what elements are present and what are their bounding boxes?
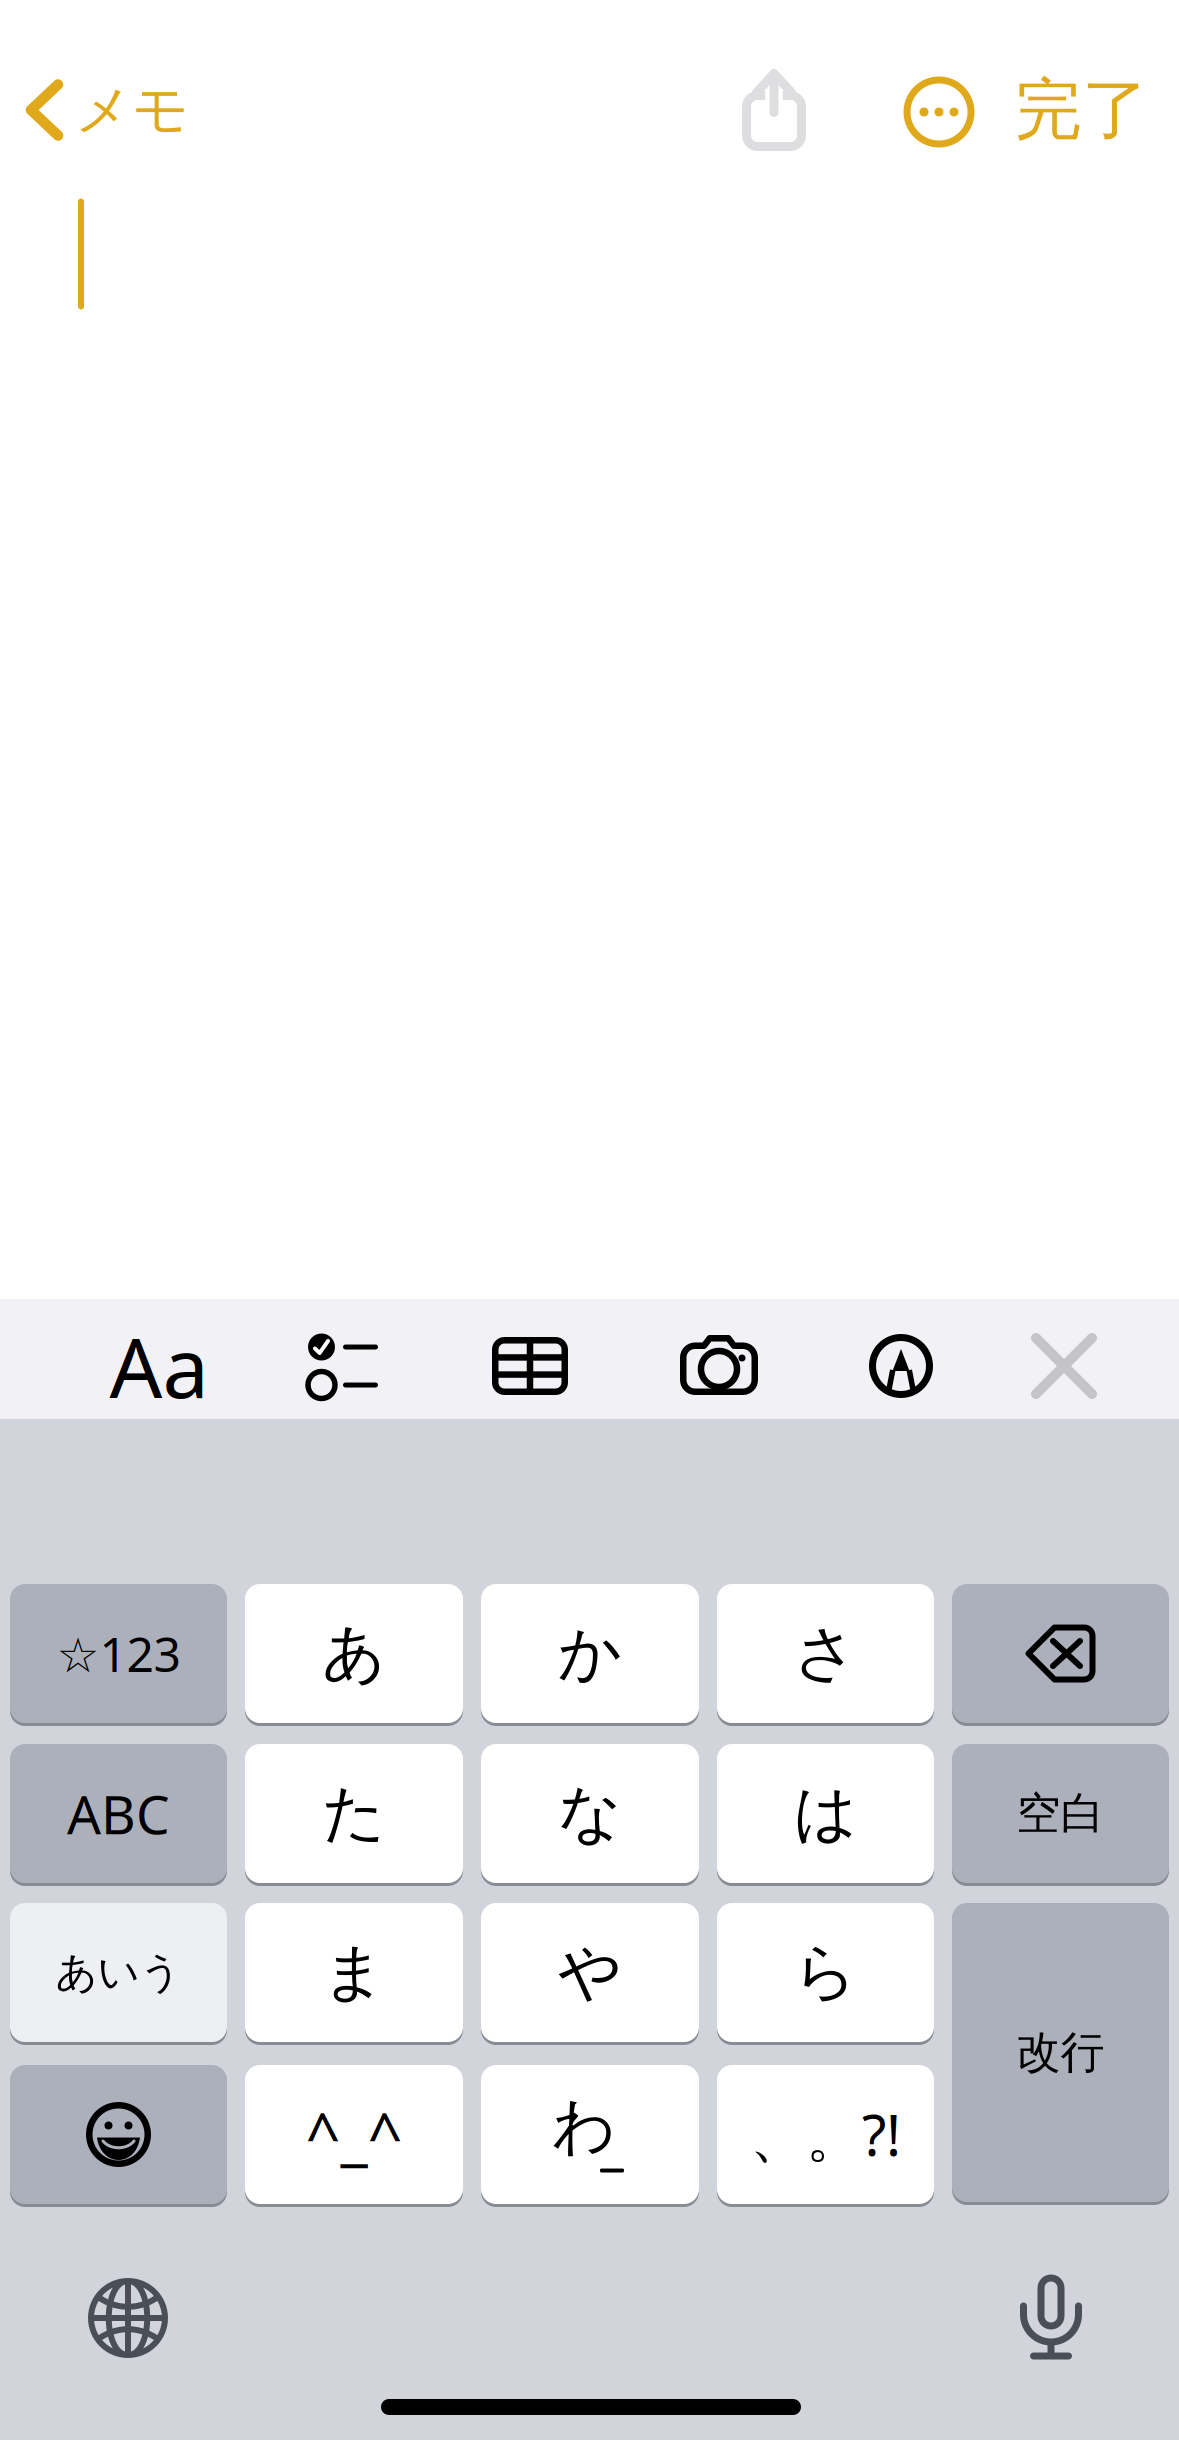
staticText: 、。?! [750,2097,901,2172]
staticText: 完了 [1015,69,1149,151]
staticText: は [793,1775,857,1852]
button[interactable]: ABC [10,1744,227,1883]
staticText: や [558,1934,622,2011]
button[interactable]: 、。?! [717,2065,934,2204]
button[interactable]: Table [455,1306,605,1426]
staticText: あいう [55,1947,181,1998]
staticText: さ [793,1615,857,1692]
button[interactable]: さ [717,1584,934,1723]
button[interactable]: 空白 [952,1744,1169,1883]
button[interactable]: Markup [826,1306,976,1426]
button[interactable]: Next keyboard [53,2243,203,2393]
button[interactable]: Camera [644,1305,794,1425]
button[interactable]: More [884,57,994,167]
staticText: あ [322,1615,386,1692]
staticText: 改行 [1016,2025,1104,2079]
button[interactable]: か [481,1584,699,1723]
button[interactable]: ら [717,1903,934,2042]
button[interactable]: は [717,1744,934,1883]
staticText: な [558,1775,622,1852]
staticText: ☆123 [56,1622,180,1685]
button[interactable]: や [481,1903,699,2042]
staticText: か [558,1615,622,1692]
button[interactable]: メモ [8,55,198,165]
button[interactable]: Emoji [10,2065,227,2204]
button[interactable]: ^_^ [245,2065,463,2204]
button[interactable]: Close [989,1306,1139,1426]
button[interactable]: Format [84,1306,234,1426]
staticText: わ [552,2088,616,2165]
button[interactable]: ま [245,1903,463,2042]
button[interactable]: あ [245,1584,463,1723]
button[interactable]: た [245,1744,463,1883]
staticText: Aa [109,1311,208,1421]
staticText: ^_^ [305,2094,402,2175]
button[interactable]: わ [481,2065,699,2204]
button[interactable]: あいう [10,1903,227,2042]
staticText: た [322,1775,386,1852]
staticText: ら [793,1934,857,2011]
button[interactable]: 改行 [952,1903,1169,2202]
button[interactable]: Share [719,53,829,163]
staticText: メモ [75,76,189,144]
button[interactable]: Checklist [268,1306,418,1426]
staticText: ま [322,1934,386,2011]
button[interactable]: Dictation [976,2243,1126,2393]
button[interactable]: ☆123 [10,1584,227,1723]
button[interactable]: Delete [952,1584,1169,1723]
button[interactable]: 完了 [1002,55,1162,165]
staticText: ABC [67,1778,170,1849]
button[interactable]: な [481,1744,699,1883]
staticText: 空白 [1016,1786,1104,1840]
